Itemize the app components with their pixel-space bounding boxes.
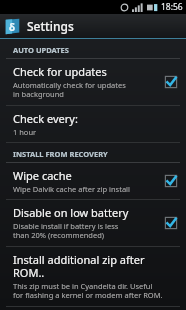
button[interactable]: Install additional zip after ROM.. xyxy=(0,247,186,306)
staticText: Settings xyxy=(27,18,74,34)
button[interactable]: Toggle option xyxy=(164,174,178,188)
button[interactable]: Disable on low battery xyxy=(0,200,186,246)
staticText: INSTALL FROM RECOVERY xyxy=(13,149,108,159)
staticText: Automatically check for updates in backg… xyxy=(13,80,126,100)
staticText: Wipe cache xyxy=(13,168,72,183)
button[interactable]: Wipe cache xyxy=(0,163,186,199)
staticText: Install additional zip after ROM.. xyxy=(13,252,178,280)
staticText: Wipe Dalvik cache after zip install xyxy=(13,184,130,194)
button[interactable]: Toggle option xyxy=(164,216,178,230)
button[interactable]: Check every: xyxy=(0,106,186,142)
staticText: Disable on low battery xyxy=(13,205,129,220)
button[interactable]: Toggle option xyxy=(164,75,178,89)
staticText: 1 hour xyxy=(13,127,37,137)
staticText: Check for updates xyxy=(13,64,107,79)
staticText: AUTO UPDATES xyxy=(13,45,69,55)
button[interactable]: Check for updates xyxy=(0,59,186,105)
staticText: This zip must be in Cyandelta dir. Usefu… xyxy=(13,281,163,301)
staticText: Disable install if battery is less than … xyxy=(13,221,119,241)
staticText: δ xyxy=(9,20,16,34)
staticText: Check every: xyxy=(13,111,78,126)
staticText: 18:56 xyxy=(161,1,183,13)
